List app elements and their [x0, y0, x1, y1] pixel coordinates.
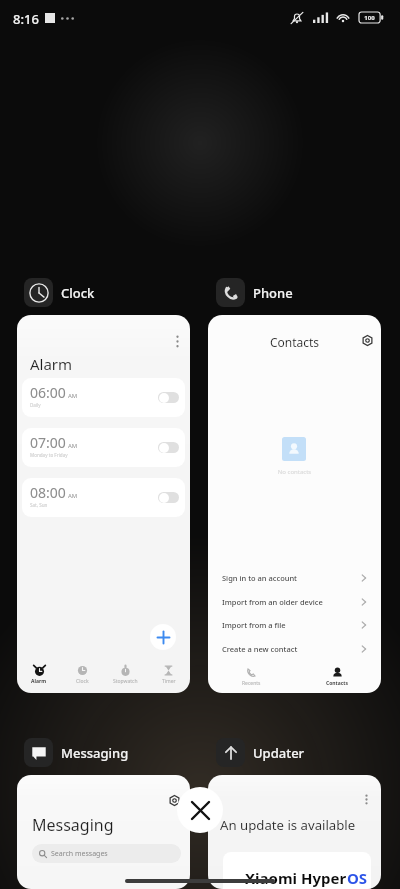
staticText: Clock: [61, 284, 95, 302]
button[interactable]: 07:00: [22, 428, 185, 467]
staticText: Messaging: [61, 744, 129, 762]
staticText: Updater: [253, 744, 305, 762]
button[interactable]: Toggle alarm: [158, 492, 179, 503]
staticText: Daily: [30, 402, 41, 408]
button[interactable]: Clock: [24, 278, 95, 307]
button[interactable]: 08:00: [22, 478, 185, 517]
staticText: Contacts: [326, 680, 349, 687]
button[interactable]: Alarm: [17, 315, 190, 693]
staticText: Phone: [253, 284, 293, 302]
button[interactable]: Settings: [360, 333, 375, 348]
button[interactable]: Messaging: [24, 738, 129, 767]
staticText: Clock: [76, 678, 89, 685]
button[interactable]: Stopwatch: [104, 657, 147, 693]
button[interactable]: Toggle alarm: [158, 392, 179, 403]
staticText: 08:00: [30, 483, 66, 502]
staticText: Messaging: [32, 814, 114, 836]
button[interactable]: Close: [177, 787, 223, 833]
staticText: AM: [68, 392, 78, 400]
staticText: Stopwatch: [113, 678, 138, 685]
staticText: OS: [347, 868, 368, 888]
button[interactable]: Search messages: [32, 844, 181, 863]
staticText: Create a new contact: [222, 644, 298, 654]
button[interactable]: Create a new contact: [208, 637, 381, 660]
staticText: Xiaomi Hyper: [245, 868, 347, 888]
button[interactable]: Timer: [147, 657, 190, 693]
staticText: No contacts: [208, 468, 381, 476]
staticText: 100: [359, 14, 380, 22]
button[interactable]: Import from a file: [208, 613, 381, 636]
staticText: Recents: [242, 680, 261, 687]
button[interactable]: Settings: [17, 775, 190, 889]
button[interactable]: Import from an older device: [208, 590, 381, 613]
staticText: Alarm: [31, 678, 47, 685]
button[interactable]: 06:00: [22, 378, 185, 417]
button[interactable]: An update is available: [208, 775, 381, 889]
staticText: Contacts: [208, 334, 381, 350]
button[interactable]: Toggle alarm: [158, 442, 179, 453]
button[interactable]: Add alarm: [150, 624, 176, 650]
staticText: AM: [68, 442, 78, 450]
staticText: 07:00: [30, 433, 66, 452]
button[interactable]: Clock: [61, 657, 104, 693]
button[interactable]: Contacts: [208, 315, 381, 693]
button[interactable]: Sign in to an account: [208, 566, 381, 589]
button[interactable]: Updater: [216, 738, 305, 767]
staticText: Alarm: [30, 354, 73, 374]
button[interactable]: Settings: [167, 793, 182, 808]
button[interactable]: Contacts: [294, 660, 381, 693]
staticText: Import from a file: [222, 620, 286, 630]
staticText: Search messages: [51, 849, 108, 859]
button[interactable]: Alarm: [17, 657, 61, 693]
staticText: Import from an older device: [222, 597, 323, 607]
staticText: Monday to Friday: [30, 452, 68, 458]
staticText: An update is available: [220, 816, 356, 834]
staticText: 06:00: [30, 383, 66, 402]
button[interactable]: Phone: [216, 278, 293, 307]
staticText: AM: [68, 492, 78, 500]
button[interactable]: Recents: [208, 660, 294, 693]
staticText: Sat, Sun: [30, 502, 48, 508]
staticText: Timer: [162, 678, 176, 685]
staticText: 8:16: [13, 10, 39, 28]
staticText: Sign in to an account: [222, 573, 297, 583]
